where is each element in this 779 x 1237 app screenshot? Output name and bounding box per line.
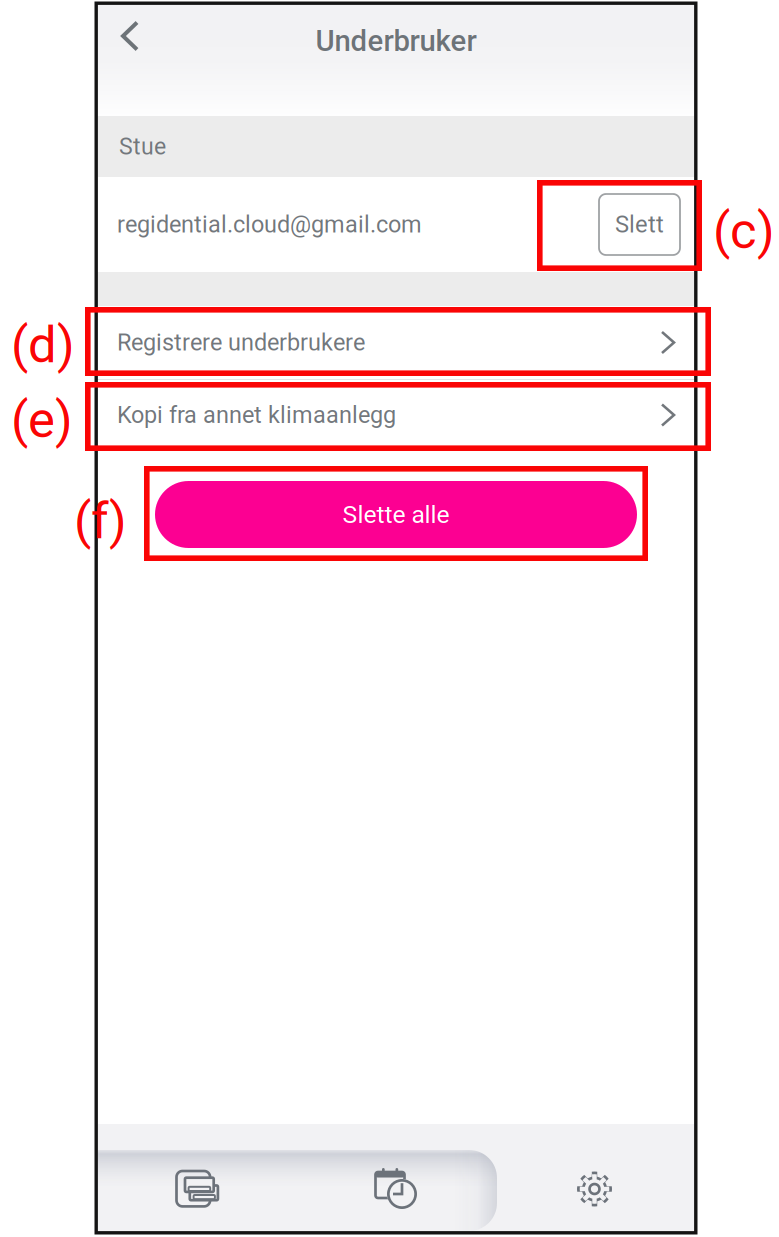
staticText: Slett xyxy=(615,211,664,238)
button[interactable]: Indoor units xyxy=(98,1124,297,1231)
staticText: regidential.cloud@gmail.com xyxy=(117,211,422,238)
staticText: (e) xyxy=(11,390,73,450)
staticText: (f) xyxy=(74,491,127,551)
button[interactable]: Registrere underbrukere xyxy=(98,306,694,379)
button[interactable]: Slette alle xyxy=(98,481,694,548)
button[interactable]: Schedule xyxy=(297,1124,495,1231)
staticText: (d) xyxy=(11,315,75,375)
staticText: Underbruker xyxy=(315,24,476,58)
staticText: Registrere underbrukere xyxy=(117,329,365,356)
button[interactable]: Slett xyxy=(599,177,680,272)
button[interactable]: Settings xyxy=(495,1124,694,1231)
staticText: Slette alle xyxy=(342,500,449,529)
button[interactable]: Kopi fra annet klimaanlegg xyxy=(98,380,694,450)
staticText: (c) xyxy=(713,201,775,261)
staticText: Kopi fra annet klimaanlegg xyxy=(117,401,396,429)
staticText: Stue xyxy=(119,133,166,160)
button[interactable]: Back xyxy=(98,5,162,67)
